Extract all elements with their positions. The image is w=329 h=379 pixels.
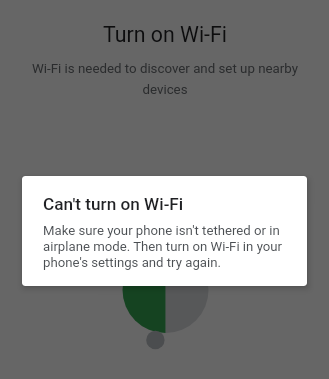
staticText: Can't turn on Wi-Fi <box>43 194 184 214</box>
staticText: Wi-Fi is needed to discover and set up n… <box>26 61 304 97</box>
button[interactable]: Can't turn on Wi-Fi <box>22 176 307 286</box>
staticText: Make sure your phone isn't tethered or i… <box>43 223 286 271</box>
staticText: Turn on Wi-Fi <box>103 22 227 47</box>
button[interactable]: Dismiss dialog <box>0 0 329 379</box>
other: Wi-Fi illustration <box>0 0 329 379</box>
